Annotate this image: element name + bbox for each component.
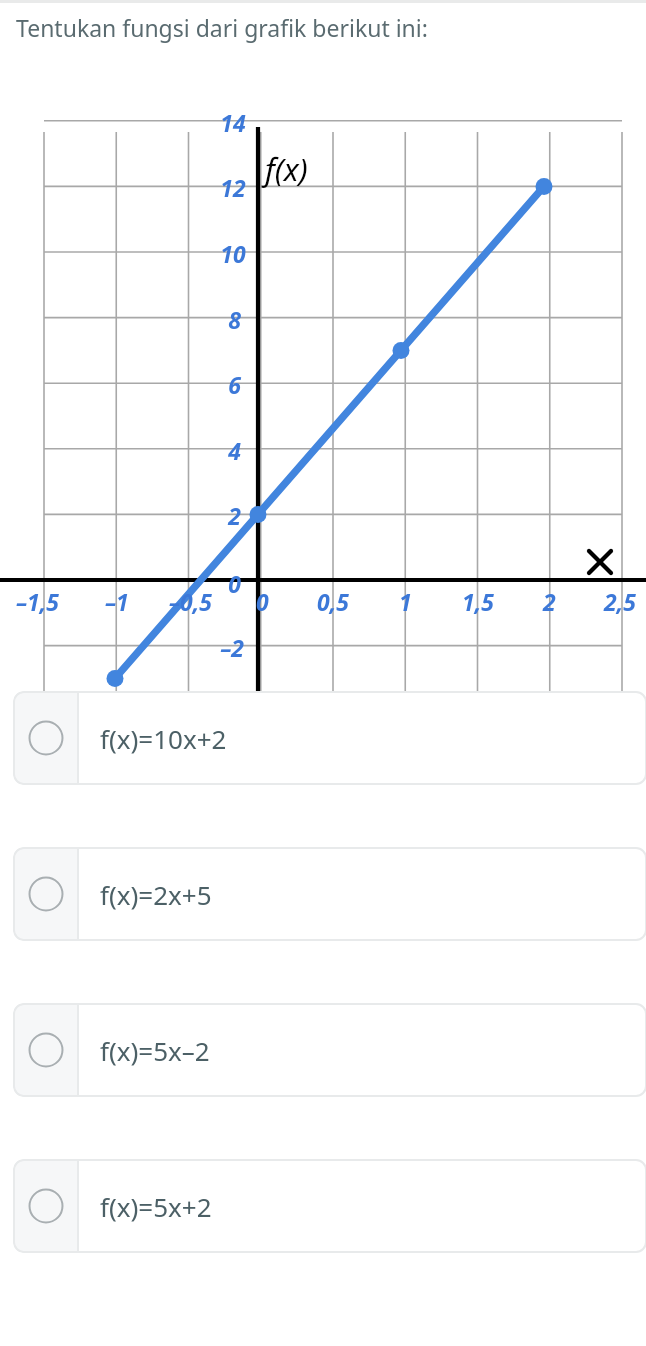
staticText: –2 <box>220 632 244 663</box>
staticText: 10 <box>220 238 246 269</box>
staticText: 0 <box>228 568 241 599</box>
staticText: –1,5 <box>16 586 59 617</box>
staticText: 4 <box>228 435 241 466</box>
staticText: 12 <box>220 172 246 203</box>
staticText: 2 <box>228 500 241 531</box>
staticText: 8 <box>228 304 241 335</box>
staticText: f(x) <box>265 148 308 190</box>
button[interactable]: f(x)=10x+2 <box>13 691 646 785</box>
staticText: 1,5 <box>462 586 494 617</box>
staticText: –1 <box>105 586 129 617</box>
staticText: –0,5 <box>169 586 212 617</box>
staticText: 6 <box>228 369 241 400</box>
staticText: f(x)=10x+2 <box>100 721 227 756</box>
staticText: f(x)=2x+5 <box>100 877 212 912</box>
staticText: 14 <box>220 107 246 138</box>
staticText: f(x)=5x–2 <box>100 1033 210 1068</box>
staticText: 0,5 <box>317 586 349 617</box>
button[interactable]: f(x)=5x+2 <box>13 1159 646 1253</box>
button[interactable]: f(x)=2x+5 <box>13 847 646 941</box>
staticText: 1 <box>399 586 412 617</box>
staticText: Tentukan fungsi dari grafik berikut ini: <box>16 12 428 43</box>
staticText: 0 <box>256 586 269 617</box>
button[interactable]: f(x)=5x–2 <box>13 1003 646 1097</box>
staticText: 2,5 <box>604 586 636 617</box>
staticText: 2 <box>543 586 556 617</box>
staticText: f(x)=5x+2 <box>100 1189 212 1224</box>
